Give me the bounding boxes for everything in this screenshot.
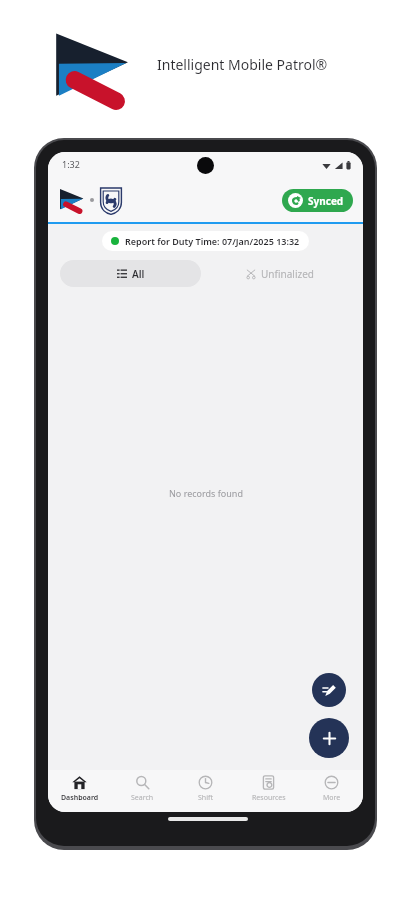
staticText: 1:32 <box>62 158 80 170</box>
staticText: Resources <box>252 793 286 803</box>
button[interactable]: More <box>300 770 363 812</box>
staticText: No records found <box>169 487 243 499</box>
staticText: Synced <box>308 194 344 208</box>
staticText: Dashboard <box>61 793 99 803</box>
button[interactable]: Dashboard <box>48 770 111 812</box>
staticText: All <box>132 267 145 281</box>
button[interactable]: Shift <box>174 770 237 812</box>
staticText: Report for Duty Time: 07/Jan/2025 13:32 <box>125 235 300 247</box>
button[interactable]: Synced <box>282 189 353 212</box>
button[interactable]: Add <box>309 718 349 758</box>
button[interactable]: Resources <box>237 770 300 812</box>
staticText: More <box>323 793 341 803</box>
staticText: Intelligent Mobile Patrol® <box>157 55 328 74</box>
staticText: Unfinalized <box>261 267 314 281</box>
button[interactable]: Search <box>111 770 174 812</box>
staticText: Shift <box>198 793 213 803</box>
button[interactable]: Report for Duty Time: 07/Jan/2025 13:32 <box>102 231 309 251</box>
staticText: Search <box>131 793 154 803</box>
button[interactable]: All <box>60 260 201 287</box>
button[interactable]: Quick actions <box>312 673 346 707</box>
button[interactable]: Unfinalized <box>209 260 351 287</box>
